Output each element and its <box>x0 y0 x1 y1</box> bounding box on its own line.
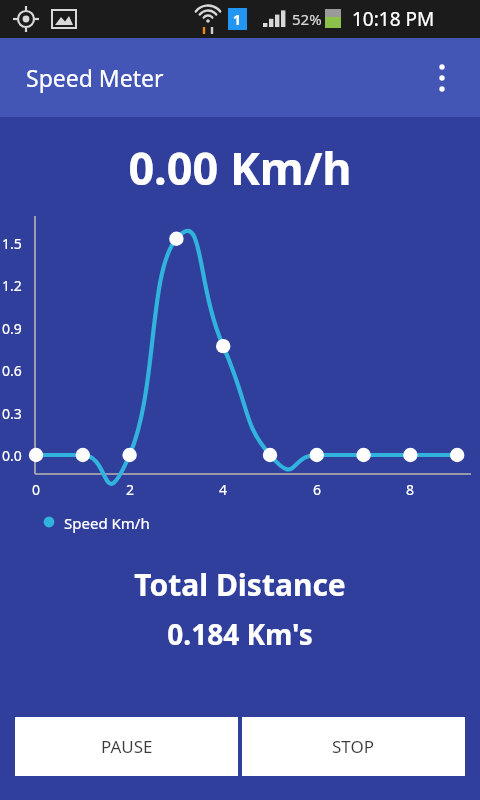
staticText: 2 <box>126 480 135 499</box>
staticText: Speed Km/h <box>64 513 150 533</box>
staticText: 1.2 <box>2 276 22 295</box>
staticText: 8 <box>406 480 415 499</box>
staticText: 0.0 <box>2 446 22 465</box>
staticText: Speed Meter <box>26 62 164 93</box>
staticText: Total Distance <box>0 564 480 605</box>
staticText: 10:18 PM <box>352 6 435 32</box>
staticText: 4 <box>219 480 228 499</box>
staticText: 0.184 Km's <box>0 615 480 653</box>
staticText: 6 <box>313 480 322 499</box>
staticText: 1 <box>233 10 242 29</box>
staticText: 0.3 <box>2 404 22 423</box>
button[interactable]: More options <box>418 54 466 102</box>
staticText: 0.9 <box>2 319 22 338</box>
staticText: 52% <box>292 9 322 29</box>
staticText: PAUSE <box>101 735 153 758</box>
staticText: 0 <box>32 480 41 499</box>
staticText: 0.00 Km/h <box>0 137 480 198</box>
staticText: 0.6 <box>2 361 22 380</box>
button[interactable]: PAUSE <box>15 717 238 776</box>
staticText: STOP <box>332 735 375 758</box>
button[interactable]: STOP <box>242 717 465 776</box>
staticText: 1.5 <box>2 234 22 253</box>
